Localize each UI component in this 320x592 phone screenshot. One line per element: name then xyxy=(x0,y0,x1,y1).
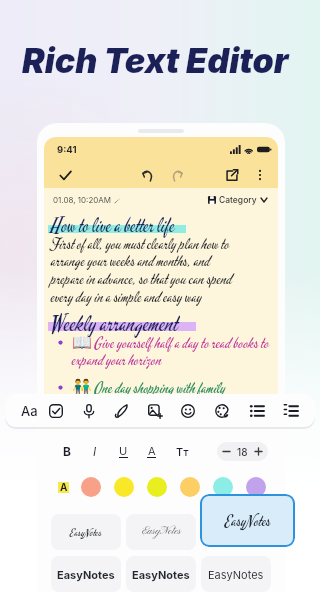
staticText: 👬 One day shopping with family xyxy=(72,377,226,398)
button[interactable]: Colour 6 xyxy=(246,477,266,497)
staticText: 18 xyxy=(237,446,248,458)
staticText: Weekly arrangement xyxy=(51,308,179,338)
staticText: EasyNotes xyxy=(142,525,181,539)
button[interactable]: Bulleted list xyxy=(244,394,270,427)
button[interactable]: Colour 2 xyxy=(114,477,134,497)
button[interactable]: Done xyxy=(54,164,76,186)
button[interactable]: Underline xyxy=(114,440,132,462)
staticText: EasyNotes xyxy=(70,525,102,540)
button[interactable]: Increase size xyxy=(249,442,268,461)
button[interactable]: Strikethrough xyxy=(142,440,160,462)
button[interactable]: Numbered list xyxy=(278,394,304,427)
button[interactable]: Export xyxy=(221,164,243,186)
staticText: EasyNotes xyxy=(225,510,271,531)
staticText: U xyxy=(119,444,128,457)
staticText: A xyxy=(60,481,68,493)
button[interactable]: Colour palette xyxy=(209,394,235,427)
staticText: EasyNotes xyxy=(208,568,264,581)
staticText: First of all, you must clearly plan how … xyxy=(51,233,233,308)
button[interactable]: Emoji xyxy=(175,394,201,427)
staticText: Rich Text Editor xyxy=(22,40,289,81)
button[interactable]: EasyNotes xyxy=(51,556,121,592)
button[interactable]: Text colour xyxy=(57,479,70,495)
staticText: Aa xyxy=(21,403,38,419)
staticText: Category xyxy=(219,195,257,205)
button[interactable]: Checklist xyxy=(43,394,69,427)
button[interactable]: Colour 5 xyxy=(213,477,233,497)
staticText: 9:41 xyxy=(57,144,77,155)
button[interactable]: Category xyxy=(208,195,267,205)
button[interactable]: Colour 1 xyxy=(81,477,101,497)
button[interactable]: Insert image xyxy=(142,394,168,427)
button[interactable]: Redo xyxy=(166,164,188,186)
staticText: Tт xyxy=(176,445,189,458)
staticText: I xyxy=(93,444,97,459)
staticText: B xyxy=(63,444,71,459)
button[interactable]: Draw xyxy=(108,394,134,427)
button[interactable]: Colour 4 xyxy=(180,477,200,497)
button[interactable]: EasyNotes xyxy=(200,494,295,547)
button[interactable]: EasyNotes xyxy=(51,514,121,550)
button[interactable]: More options xyxy=(252,167,268,183)
staticText: 01.08, 10:20AM xyxy=(53,195,112,205)
staticText: EasyNotes xyxy=(132,568,190,581)
staticText: A xyxy=(148,444,156,457)
button[interactable]: EasyNotes xyxy=(201,556,271,592)
staticText: EasyNotes xyxy=(57,568,115,581)
button[interactable]: 01.08, 10:20AM xyxy=(53,195,121,205)
staticText: 📖 Give yourself half a day to read books… xyxy=(72,332,270,371)
button[interactable]: Decrease size xyxy=(217,442,236,461)
button[interactable]: Italic xyxy=(86,440,104,462)
staticText: How to live a better life xyxy=(51,212,175,238)
button[interactable]: EasyNotes xyxy=(126,514,196,550)
button[interactable]: Voice note xyxy=(76,394,102,427)
button[interactable]: B xyxy=(58,440,76,462)
button[interactable]: EasyNotes xyxy=(126,556,196,592)
button[interactable]: Text size xyxy=(173,440,191,462)
button[interactable]: Undo xyxy=(136,164,158,186)
button[interactable]: Aa xyxy=(16,394,42,427)
button[interactable]: Colour 3 xyxy=(147,477,167,497)
